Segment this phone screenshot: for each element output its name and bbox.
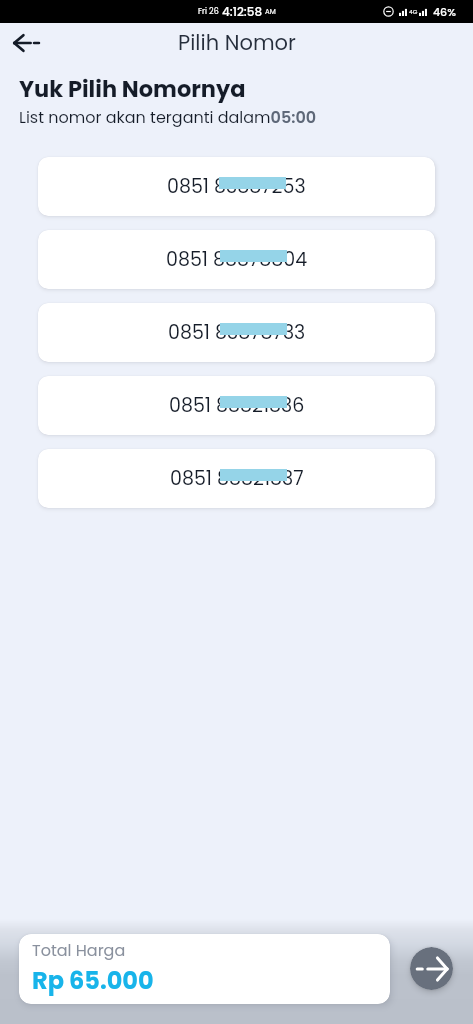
staticText: Yuk Pilih Nomornya	[19, 73, 246, 104]
staticText: 0851 83887253	[167, 173, 306, 200]
staticText: 46%	[433, 4, 456, 19]
button[interactable]: 0851 88821837	[38, 449, 435, 508]
staticText: Fri 26	[198, 6, 219, 17]
staticText: 4:12:58	[222, 3, 263, 20]
staticText: List nomor akan terganti dalam05:00	[19, 106, 317, 128]
button[interactable]: 0851 83878733	[38, 303, 435, 362]
staticText: AM	[265, 7, 276, 17]
button[interactable]: 0851 88878804	[38, 230, 435, 289]
staticText: 0851 88821836	[169, 392, 305, 419]
staticText: 4G	[409, 8, 418, 16]
button[interactable]: Back	[4, 23, 46, 62]
staticText: Rp 65.000	[32, 964, 154, 998]
staticText: Total Harga	[32, 939, 126, 961]
staticText: 0851 88821837	[170, 465, 304, 492]
button[interactable]: 0851 88821836	[38, 376, 435, 435]
staticText: Pilih Nomor	[178, 28, 296, 57]
button[interactable]: Next	[410, 947, 453, 990]
staticText: 0851 83878733	[168, 319, 306, 346]
staticText: 0851 88878804	[166, 246, 308, 273]
button[interactable]: 0851 83887253	[38, 157, 435, 216]
button[interactable]: Total Harga	[19, 934, 390, 1004]
